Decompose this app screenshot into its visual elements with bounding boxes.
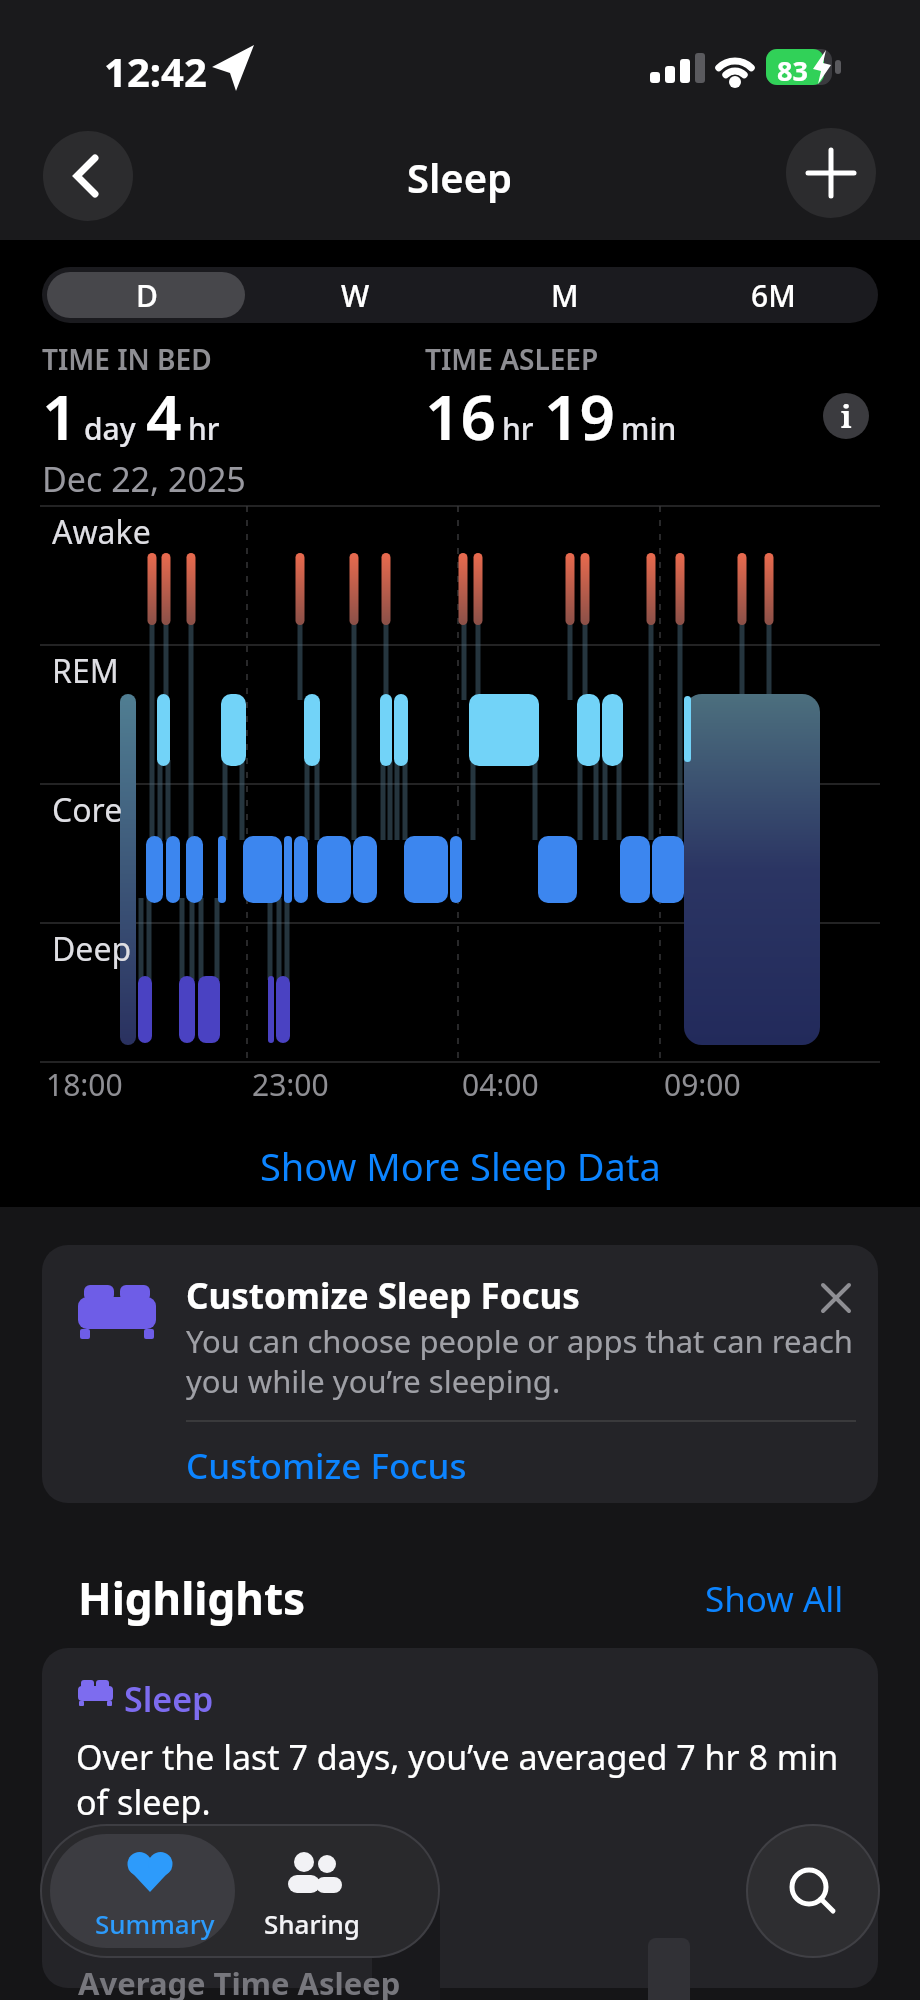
button[interactable] xyxy=(786,128,876,218)
staticText: i xyxy=(841,396,852,437)
button[interactable] xyxy=(808,1270,864,1326)
staticText: W xyxy=(341,275,370,316)
staticText: 04:00 xyxy=(462,1064,539,1105)
staticText: hr xyxy=(502,408,534,449)
staticText: M xyxy=(551,275,579,316)
staticText: REM xyxy=(52,649,119,693)
staticText: Deep xyxy=(52,927,132,971)
button[interactable]: Customize Focus xyxy=(186,1438,586,1494)
button[interactable] xyxy=(748,1826,878,1956)
staticText: 1 xyxy=(42,374,78,458)
staticText: 19 xyxy=(544,374,615,458)
staticText: Sharing xyxy=(264,1906,360,1941)
staticText: TIME IN BED xyxy=(42,340,212,378)
staticText: Customize Focus xyxy=(186,1442,467,1490)
staticText: Dec 22, 2025 xyxy=(42,456,246,502)
staticText: Over the last 7 days, you’ve averaged 7 … xyxy=(76,1734,839,1824)
staticText: Average Time Asleep xyxy=(78,1962,401,2000)
staticText: 23:00 xyxy=(252,1064,329,1105)
staticText: Sleep xyxy=(407,150,513,204)
staticText: Show All xyxy=(705,1575,844,1623)
button[interactable]: Show More Sleep Data xyxy=(0,1138,920,1194)
staticText: D xyxy=(136,275,158,316)
button[interactable]: Show All xyxy=(604,1574,844,1624)
staticText: 09:00 xyxy=(664,1064,741,1105)
button[interactable]: W xyxy=(251,267,460,323)
button[interactable]: i xyxy=(823,393,869,439)
button[interactable]: D xyxy=(42,267,251,323)
staticText: Core xyxy=(52,788,123,832)
staticText: min xyxy=(621,408,677,449)
button[interactable] xyxy=(258,1834,408,1948)
staticText: Customize Sleep Focus xyxy=(186,1272,580,1320)
button[interactable]: M xyxy=(460,267,669,323)
staticText: TIME ASLEEP xyxy=(425,340,599,378)
staticText: Sleep xyxy=(124,1676,214,1722)
staticText: Show More Sleep Data xyxy=(260,1140,661,1192)
staticText: Highlights xyxy=(78,1568,306,1628)
button[interactable] xyxy=(42,1648,878,1988)
staticText: 4 xyxy=(146,374,182,458)
staticText: Awake xyxy=(52,510,151,554)
staticText: 16 xyxy=(425,374,496,458)
staticText: 12:42 xyxy=(104,44,207,98)
staticText: Summary xyxy=(95,1906,215,1941)
staticText: 83 xyxy=(777,52,808,89)
staticText: 6M xyxy=(751,275,796,316)
staticText: hr xyxy=(188,408,220,449)
button[interactable] xyxy=(50,1834,235,1948)
button[interactable]: 6M xyxy=(669,267,878,323)
button[interactable] xyxy=(43,131,133,221)
staticText: 18:00 xyxy=(46,1064,123,1105)
staticText: day xyxy=(84,408,136,449)
staticText: You can choose people or apps that can r… xyxy=(186,1320,853,1402)
